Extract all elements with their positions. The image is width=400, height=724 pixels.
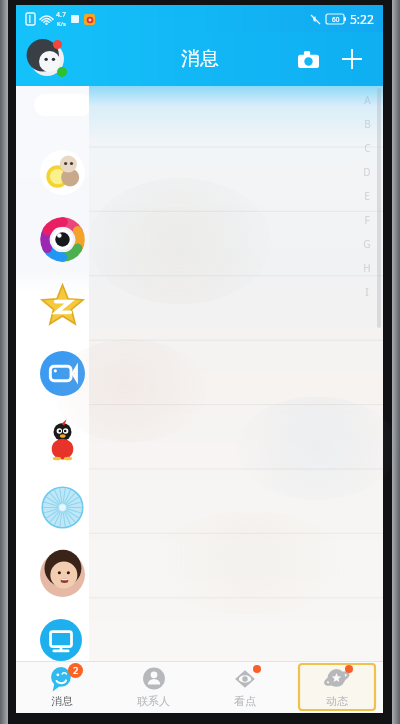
staticText: 看点 xyxy=(234,694,256,708)
staticText: 60 xyxy=(332,15,340,24)
staticText: H xyxy=(363,261,371,275)
staticText: F xyxy=(364,213,370,227)
staticText: I xyxy=(365,285,369,299)
staticText: C xyxy=(364,141,371,155)
staticText: D xyxy=(363,165,371,179)
button[interactable]: Chat avatar xyxy=(40,619,85,661)
staticText: 联系人 xyxy=(137,694,170,708)
button[interactable]: Chat avatar xyxy=(40,552,85,597)
button[interactable]: Chat avatar xyxy=(40,351,85,396)
staticText: 消息 xyxy=(51,694,73,708)
staticText: 4.7 xyxy=(56,10,66,20)
button[interactable]: 联系人 xyxy=(115,664,191,710)
staticText: G xyxy=(363,237,371,251)
button[interactable]: Chat avatar xyxy=(40,485,85,530)
staticText: E xyxy=(364,189,370,203)
button[interactable]: 2 xyxy=(24,664,100,710)
button[interactable]: Chat avatar xyxy=(40,217,85,262)
button[interactable]: Profile xyxy=(30,38,72,80)
button[interactable]: Search xyxy=(34,94,92,116)
staticText: 5:22 xyxy=(350,11,374,27)
button[interactable]: Add xyxy=(335,42,369,76)
button[interactable]: 看点 xyxy=(207,664,283,710)
button[interactable]: Chat avatar xyxy=(40,418,85,463)
staticText: 消息 xyxy=(181,47,219,71)
button[interactable]: 动态 xyxy=(299,664,375,710)
staticText: A xyxy=(364,93,371,107)
staticText: 2 xyxy=(73,664,79,677)
button[interactable]: Chat avatar xyxy=(40,150,85,195)
button[interactable]: Camera xyxy=(291,42,325,76)
staticText: K/s xyxy=(57,20,66,28)
button[interactable]: Chat avatar xyxy=(40,284,85,329)
staticText: 动态 xyxy=(326,694,348,708)
staticText: B xyxy=(364,117,371,131)
